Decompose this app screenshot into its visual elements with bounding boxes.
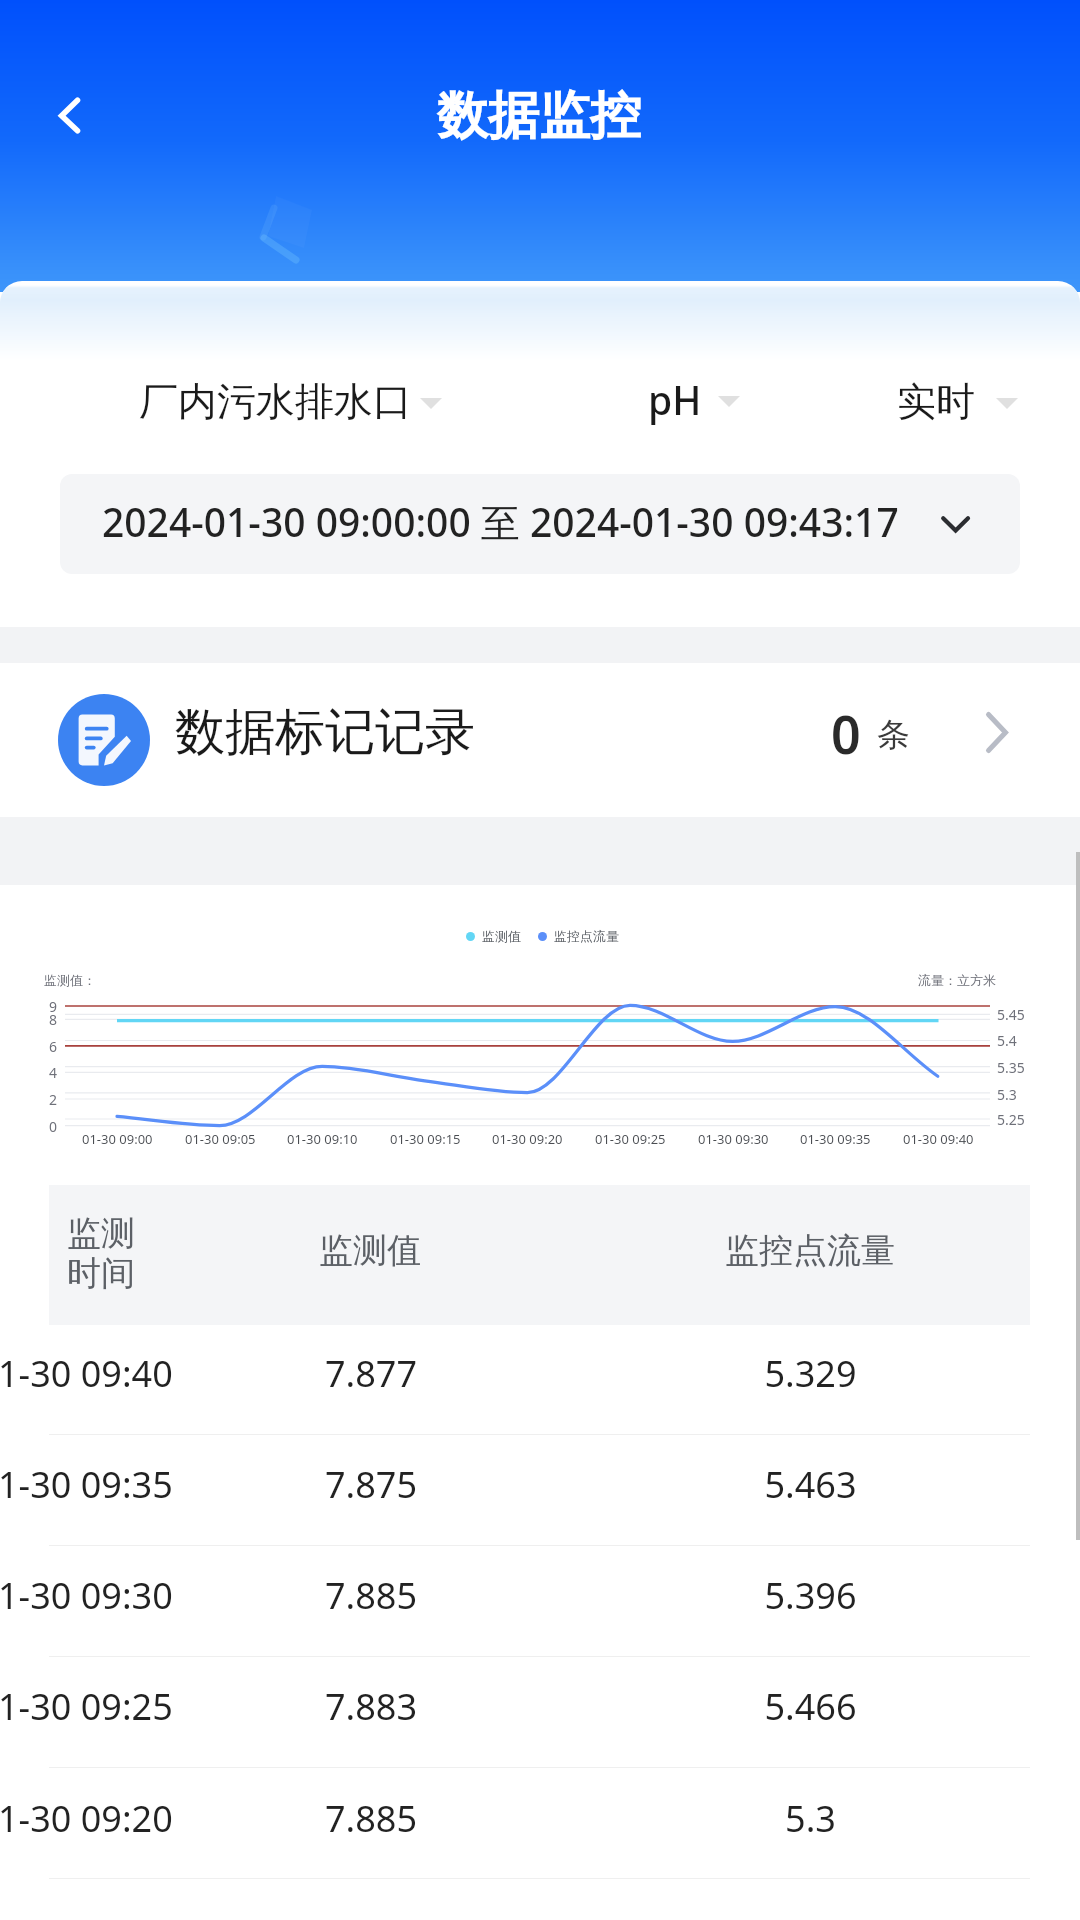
button[interactable]: 1-30 09:25 xyxy=(0,1656,1080,1767)
button[interactable]: 1-30 09:20 xyxy=(0,1768,1080,1879)
staticText: 1-30 09:30 xyxy=(0,1571,173,1620)
staticText: 5.25 xyxy=(997,1110,1025,1129)
staticText: 监测值： xyxy=(44,972,96,988)
button[interactable]: pH xyxy=(638,373,750,426)
staticText: 2 xyxy=(49,1090,58,1109)
staticText: 监测 时间 xyxy=(67,1212,135,1295)
staticText: 1-30 09:35 xyxy=(0,1460,173,1509)
button[interactable]: 1-30 09:30 xyxy=(0,1545,1080,1656)
staticText: 9 xyxy=(49,997,58,1016)
staticText: 0 xyxy=(49,1117,58,1136)
staticText: 5.463 xyxy=(764,1460,857,1509)
staticText: 5.329 xyxy=(764,1349,857,1398)
button[interactable]: 实时 xyxy=(887,377,1028,426)
staticText: 01-30 09:40 xyxy=(903,1130,974,1148)
staticText: 7.885 xyxy=(325,1794,418,1843)
staticText: 1-30 09:20 xyxy=(0,1794,173,1843)
staticText: 01-30 09:35 xyxy=(800,1130,871,1148)
staticText: 1-30 09:25 xyxy=(0,1682,173,1731)
staticText: 7.875 xyxy=(325,1460,418,1509)
staticText: pH xyxy=(648,373,702,426)
button[interactable]: 2024-01-30 09:00:00 至 2024-01-30 09:43:1… xyxy=(60,474,1020,574)
staticText: 01-30 09:20 xyxy=(492,1130,563,1148)
staticText: 01-30 09:25 xyxy=(595,1130,666,1148)
staticText: 数据标记记录 xyxy=(175,701,475,764)
staticText: 0 xyxy=(831,698,861,769)
button[interactable]: 1-30 09:40 xyxy=(0,1323,1080,1434)
staticText: 01-30 09:15 xyxy=(390,1130,461,1148)
staticText: 监控点流量 xyxy=(554,928,619,944)
staticText: 监控点流量 xyxy=(725,1229,895,1272)
staticText: 01-30 09:05 xyxy=(185,1130,256,1148)
staticText: 5.35 xyxy=(997,1058,1025,1077)
button[interactable]: 厂内污水排水口 xyxy=(129,377,452,426)
staticText: 5.466 xyxy=(764,1682,857,1731)
staticText: 1-30 09:40 xyxy=(0,1349,173,1398)
staticText: 5.45 xyxy=(997,1005,1025,1024)
staticText: 7.877 xyxy=(325,1349,418,1398)
staticText: 数据监控 xyxy=(437,84,641,148)
staticText: 5.3 xyxy=(997,1085,1017,1104)
staticText: 5.3 xyxy=(785,1794,836,1843)
staticText: 01-30 09:30 xyxy=(698,1130,769,1148)
staticText: 7.885 xyxy=(325,1571,418,1620)
staticText: 厂内污水排水口 xyxy=(139,377,412,426)
button[interactable]: Back xyxy=(38,82,108,152)
staticText: 监测值 xyxy=(319,1229,421,1272)
staticText: 监测值 xyxy=(482,928,521,944)
button[interactable]: 1-30 09:35 xyxy=(0,1434,1080,1545)
staticText: 4 xyxy=(49,1063,58,1082)
staticText: 6 xyxy=(49,1037,58,1056)
staticText: 01-30 09:00 xyxy=(82,1130,153,1148)
button[interactable]: 数据标记记录 xyxy=(0,663,1080,817)
staticText: 7.883 xyxy=(325,1682,418,1731)
staticText: 8 xyxy=(49,1010,58,1029)
staticText: 5.4 xyxy=(997,1031,1017,1050)
staticText: 01-30 09:10 xyxy=(287,1130,358,1148)
staticText: 2024-01-30 09:00:00 至 2024-01-30 09:43:1… xyxy=(102,495,899,548)
staticText: 5.396 xyxy=(764,1571,857,1620)
staticText: 流量：立方米 xyxy=(918,972,996,988)
staticText: 条 xyxy=(877,714,910,756)
staticText: 实时 xyxy=(897,377,975,426)
